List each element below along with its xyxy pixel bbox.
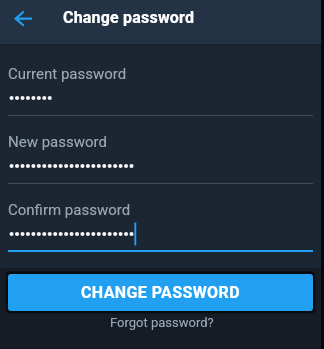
button[interactable]: Forgot password?	[110, 315, 214, 330]
staticText: Confirm password	[8, 201, 131, 219]
staticText: New password	[8, 133, 107, 151]
staticText: Current password	[8, 65, 127, 83]
staticText: Forgot password?	[110, 315, 214, 330]
button[interactable]: CHANGE PASSWORD	[8, 274, 313, 311]
staticText: CHANGE PASSWORD	[81, 283, 240, 302]
button[interactable]: Back	[0, 0, 44, 38]
staticText: Change password	[63, 8, 195, 27]
